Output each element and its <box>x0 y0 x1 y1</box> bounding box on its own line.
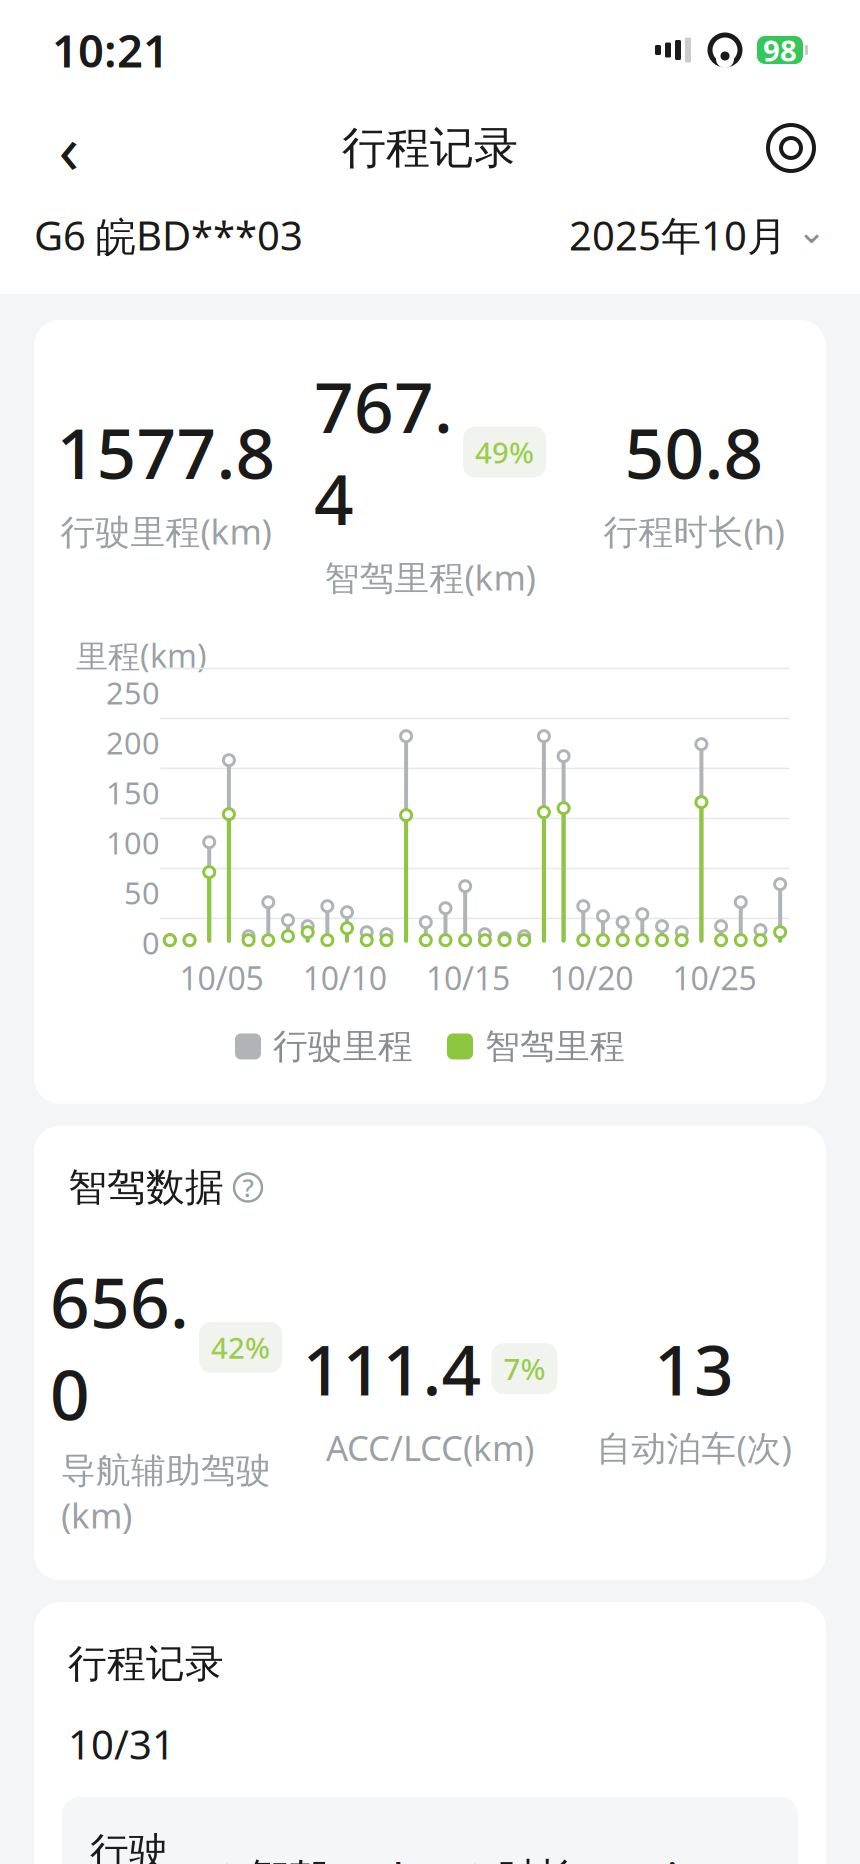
button[interactable]: 设置 <box>756 113 826 183</box>
staticText: 行驶 2.5km <box>90 1825 204 1864</box>
staticText: 智驾里程(km) <box>324 554 535 600</box>
staticText: 时长 18min <box>498 1850 701 1864</box>
staticText: 10/31 <box>68 1717 175 1771</box>
staticText: 7% <box>503 1349 545 1388</box>
button[interactable]: 行驶 2.5km <box>62 1797 798 1864</box>
staticText: 智驾数据 <box>68 1164 224 1211</box>
staticText: 100 <box>106 822 160 863</box>
staticText: 10/15 <box>426 957 510 999</box>
staticText: 49% <box>475 433 534 472</box>
staticText: 2025年10月 <box>569 208 787 261</box>
staticText: 150 <box>106 772 160 813</box>
staticText: 行程记录 <box>68 1640 224 1687</box>
staticText: 250 <box>106 672 160 713</box>
staticText: 10/05 <box>180 957 264 999</box>
staticText: ACC/LCC(km) <box>326 1425 534 1471</box>
staticText: ‹ <box>58 104 79 192</box>
staticText: 10:21 <box>52 20 169 80</box>
staticText: G6 皖BD***03 <box>34 208 303 262</box>
staticText: 10/25 <box>672 957 756 999</box>
staticText: 111.4 <box>302 1323 481 1415</box>
button[interactable]: 返回 <box>34 113 104 183</box>
staticText: 1577.8 <box>56 406 275 498</box>
staticText: 767.4 <box>314 360 453 544</box>
staticText: 行驶里程 <box>273 1025 413 1068</box>
staticText: 98 <box>763 30 797 69</box>
staticText: 智驾 0.0km <box>250 1850 452 1864</box>
staticText: 42% <box>211 1328 270 1367</box>
staticText: 行驶里程(km) <box>60 508 271 554</box>
staticText: 656.0 <box>50 1255 189 1439</box>
staticText: 行程时长(h) <box>603 508 784 554</box>
staticText: 50.8 <box>624 406 763 498</box>
staticText: 10/10 <box>303 957 387 999</box>
button[interactable]: 智驾数据说明 <box>234 1171 262 1204</box>
staticText: 智驾里程 <box>485 1025 625 1068</box>
staticText: 里程(km) <box>76 634 207 677</box>
staticText: 200 <box>106 722 160 763</box>
staticText: 50 <box>124 872 160 913</box>
staticText: 行程记录 <box>342 121 518 175</box>
staticText: 0 <box>142 922 160 963</box>
staticText: 10/20 <box>549 957 633 999</box>
staticText: 导航辅助驾驶(km) <box>61 1449 271 1538</box>
staticText: 自动泊车(次) <box>596 1425 791 1471</box>
staticText: 13 <box>654 1323 734 1415</box>
button[interactable]: 2025年10月 <box>569 208 826 261</box>
staticText: ⌄ <box>797 211 826 251</box>
staticText: ? <box>242 1171 253 1204</box>
